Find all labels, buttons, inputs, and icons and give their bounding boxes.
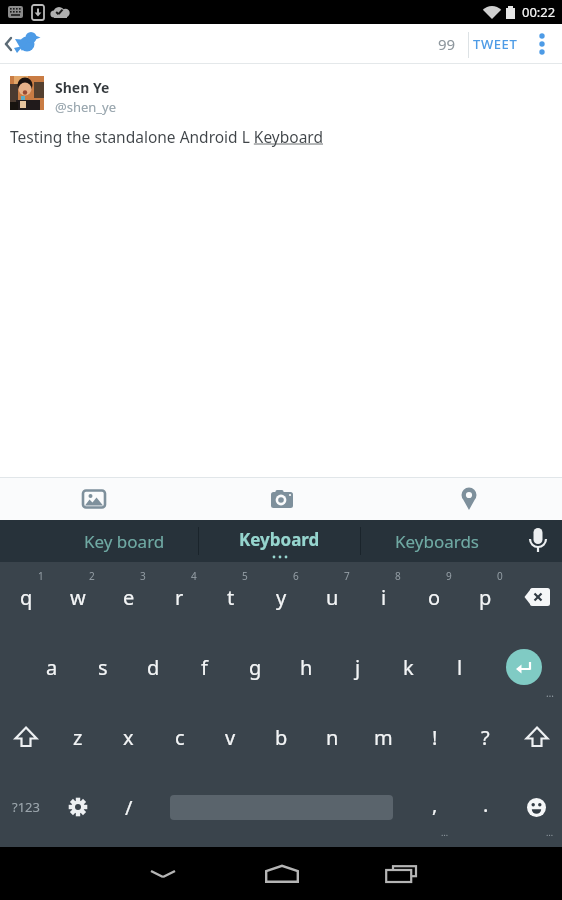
- staticText: y: [276, 584, 287, 611]
- staticText: k: [403, 654, 414, 681]
- button[interactable]: b: [256, 702, 307, 772]
- staticText: 2: [89, 569, 95, 583]
- staticText: 4: [191, 569, 197, 583]
- staticText: z: [73, 724, 83, 751]
- button[interactable]: g: [230, 632, 281, 702]
- button[interactable]: [222, 847, 341, 900]
- staticText: n: [326, 724, 339, 751]
- button[interactable]: r: [154, 562, 205, 632]
- button[interactable]: [521, 24, 562, 63]
- button[interactable]: j: [332, 632, 383, 702]
- button[interactable]: .: [460, 772, 511, 842]
- staticText: 99: [438, 34, 456, 54]
- button[interactable]: n: [307, 702, 358, 772]
- button[interactable]: q: [0, 562, 52, 632]
- button[interactable]: TWEET: [469, 24, 521, 63]
- staticText: TWEET: [473, 35, 518, 53]
- button[interactable]: e: [103, 562, 154, 632]
- button[interactable]: t: [205, 562, 256, 632]
- button[interactable]: h: [281, 632, 332, 702]
- staticText: v: [225, 724, 236, 751]
- button[interactable]: [52, 772, 103, 842]
- button[interactable]: w: [52, 562, 103, 632]
- button[interactable]: [0, 478, 188, 520]
- button[interactable]: o: [409, 562, 460, 632]
- button[interactable]: s: [77, 632, 128, 702]
- staticText: l: [457, 654, 463, 681]
- staticText: j: [355, 654, 361, 681]
- button[interactable]: Key board: [0, 520, 198, 562]
- staticText: e: [123, 584, 135, 611]
- staticText: i: [381, 584, 387, 611]
- staticText: 1: [38, 569, 44, 583]
- button[interactable]: f: [179, 632, 230, 702]
- staticText: …: [546, 826, 554, 838]
- button[interactable]: [375, 478, 562, 520]
- button[interactable]: ?123: [0, 772, 52, 842]
- staticText: a: [46, 654, 58, 681]
- staticText: t: [227, 584, 235, 611]
- staticText: /: [125, 794, 133, 821]
- staticText: p: [479, 584, 492, 611]
- staticText: ?123: [12, 798, 40, 816]
- button[interactable]: y: [256, 562, 307, 632]
- staticText: …: [546, 686, 554, 700]
- button[interactable]: i: [358, 562, 409, 632]
- staticText: x: [123, 724, 134, 751]
- staticText: Shen Ye: [55, 78, 110, 97]
- staticText: q: [20, 584, 33, 611]
- button[interactable]: k: [383, 632, 434, 702]
- staticText: 7: [344, 569, 350, 583]
- staticText: ?: [481, 724, 490, 751]
- button[interactable]: [188, 478, 375, 520]
- staticText: w: [70, 584, 86, 611]
- button[interactable]: v: [205, 702, 256, 772]
- button[interactable]: [511, 702, 562, 772]
- button[interactable]: Keyboards: [361, 520, 513, 562]
- button[interactable]: [154, 772, 409, 842]
- staticText: 00:22: [522, 3, 556, 21]
- button[interactable]: a: [26, 632, 77, 702]
- button[interactable]: /: [103, 772, 154, 842]
- staticText: Keyboard: [239, 528, 320, 551]
- button[interactable]: p: [460, 562, 511, 632]
- staticText: @shen_ye: [55, 98, 117, 116]
- button[interactable]: ,: [409, 772, 460, 842]
- button[interactable]: c: [154, 702, 205, 772]
- button[interactable]: x: [103, 702, 154, 772]
- staticText: h: [300, 654, 313, 681]
- button[interactable]: ?: [460, 702, 511, 772]
- staticText: ,: [432, 791, 438, 818]
- button[interactable]: …: [511, 772, 562, 842]
- button[interactable]: z: [52, 702, 103, 772]
- button[interactable]: m: [358, 702, 409, 772]
- staticText: 3: [140, 569, 146, 583]
- button[interactable]: [513, 520, 562, 562]
- button[interactable]: [103, 847, 222, 900]
- button[interactable]: d: [128, 632, 179, 702]
- staticText: Keyboards: [395, 530, 479, 553]
- button[interactable]: l: [434, 632, 485, 702]
- staticText: u: [326, 584, 339, 611]
- staticText: s: [98, 654, 108, 681]
- staticText: m: [374, 724, 393, 751]
- button[interactable]: !: [409, 702, 460, 772]
- staticText: 6: [293, 569, 299, 583]
- button[interactable]: [341, 847, 460, 900]
- staticText: c: [175, 724, 185, 751]
- staticText: !: [432, 724, 438, 751]
- button[interactable]: [511, 562, 562, 632]
- staticText: Testing the standalone Android L Keyboar…: [10, 126, 323, 147]
- button[interactable]: u: [307, 562, 358, 632]
- staticText: 0: [497, 569, 503, 583]
- button[interactable]: [0, 24, 60, 63]
- button[interactable]: …: [485, 632, 562, 702]
- staticText: 8: [395, 569, 401, 583]
- staticText: r: [175, 584, 184, 611]
- staticText: g: [249, 654, 262, 681]
- staticText: d: [147, 654, 160, 681]
- button[interactable]: [0, 702, 52, 772]
- staticText: .: [483, 791, 489, 818]
- button[interactable]: Keyboard: [199, 520, 360, 562]
- staticText: Key board: [84, 530, 165, 553]
